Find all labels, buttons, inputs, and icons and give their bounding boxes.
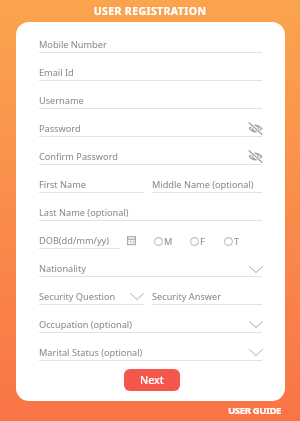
other: Expand dropdown: [249, 319, 263, 329]
other: Pick date: [127, 236, 136, 245]
staticText: Occupation (optional): [39, 318, 132, 331]
staticText: M: [164, 235, 173, 248]
staticText: Security Question: [39, 290, 116, 303]
button[interactable]: Last Name (optional): [39, 204, 262, 220]
other: Expand dropdown: [130, 291, 144, 301]
button[interactable]: Security Answer: [152, 288, 262, 304]
staticText: Security Answer: [152, 290, 222, 303]
other: Expand dropdown: [249, 347, 263, 357]
staticText: Nationality: [39, 262, 86, 275]
button[interactable]: Confirm Password: [39, 148, 262, 164]
staticText: Mobile Number: [39, 38, 107, 51]
other: Expand dropdown: [249, 264, 263, 274]
staticText: Last Name (optional): [39, 206, 129, 219]
button[interactable]: Marital Status (optional): [39, 344, 262, 360]
button[interactable]: Username: [39, 92, 262, 108]
staticText: Middle Name (optional): [152, 178, 254, 191]
button[interactable]: DOB(dd/mm/yy): [39, 232, 120, 248]
staticText: DOB(dd/mm/yy): [39, 234, 110, 247]
staticText: Password: [39, 122, 81, 135]
other: Show password: [248, 122, 263, 135]
button[interactable]: Password: [39, 120, 262, 136]
button[interactable]: Middle Name (optional): [152, 176, 262, 192]
button[interactable]: T: [224, 234, 240, 248]
button[interactable]: Security Question: [39, 288, 144, 304]
button[interactable]: USER GUIDE: [228, 404, 300, 421]
staticText: Marital Status (optional): [39, 346, 143, 359]
staticText: First Name: [39, 178, 86, 191]
staticText: USER REGISTRATION: [0, 4, 300, 18]
button[interactable]: Email Id: [39, 64, 262, 80]
button[interactable]: Occupation (optional): [39, 316, 262, 332]
staticText: T: [234, 235, 240, 248]
button[interactable]: Nationality: [39, 260, 262, 276]
staticText: Username: [39, 94, 84, 107]
button[interactable]: Next: [124, 369, 180, 391]
button[interactable]: Mobile Number: [39, 36, 262, 52]
staticText: Email Id: [39, 66, 74, 79]
staticText: F: [200, 235, 205, 248]
staticText: USER GUIDE: [228, 404, 282, 417]
other: Show password: [248, 150, 263, 163]
staticText: Confirm Password: [39, 150, 118, 163]
button[interactable]: F: [190, 234, 205, 248]
button[interactable]: M: [154, 234, 173, 248]
button[interactable]: First Name: [39, 176, 144, 192]
staticText: Next: [140, 373, 164, 387]
